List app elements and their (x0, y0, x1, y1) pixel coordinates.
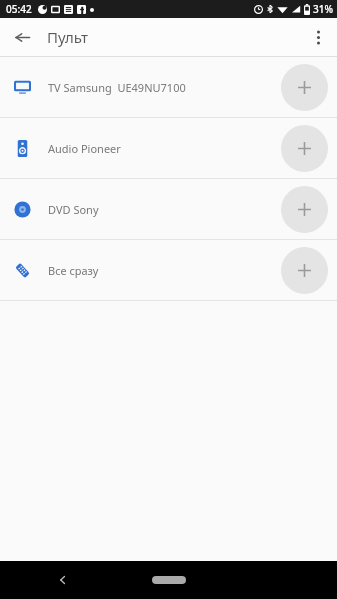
staticText: Пульт (47, 27, 88, 47)
button[interactable]: Back (8, 23, 36, 51)
button[interactable]: Home (152, 576, 186, 584)
button[interactable]: Add DVD Sony (281, 186, 328, 233)
button[interactable]: Add Все сразу (281, 247, 328, 294)
staticText: DVD Sony (48, 202, 99, 217)
staticText: 31% (313, 2, 333, 16)
button[interactable]: Audio Pioneer (0, 118, 337, 179)
staticText: 05:42 (6, 2, 32, 16)
button[interactable]: Все сразу (0, 240, 337, 301)
button[interactable]: More options (304, 23, 332, 51)
button[interactable]: DVD Sony (0, 179, 337, 240)
staticText: Все сразу (48, 263, 99, 278)
staticText: TV Samsung UE49NU7100 (48, 80, 186, 95)
button[interactable]: Add Audio Pioneer (281, 125, 328, 172)
button[interactable]: Back (50, 567, 76, 593)
button[interactable]: TV Samsung UE49NU7100 (0, 57, 337, 118)
staticText: Audio Pioneer (48, 141, 121, 156)
button[interactable]: Add TV Samsung UE49NU7100 (281, 64, 328, 111)
